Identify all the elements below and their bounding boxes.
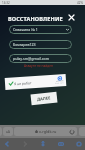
button[interactable]: Bookmarks: [55, 138, 66, 150]
staticText: ᴀA: [6, 129, 11, 134]
staticText: Я не робот: [14, 80, 32, 86]
staticText: ДАЛЕЕ: [37, 95, 51, 102]
button[interactable]: pulay.sm@gmail.com: [13, 54, 69, 63]
staticText: 42%: [77, 1, 83, 5]
staticText: x-rgldk.ru: [39, 129, 57, 134]
button[interactable]: Close: [66, 12, 77, 23]
button[interactable]: Back: [1, 138, 12, 150]
staticText: Privacy - Terms: [55, 82, 64, 85]
staticText: reCAPTCHA: [56, 80, 64, 83]
button[interactable]: Text size: [3, 127, 13, 136]
button[interactable]: Share: [37, 138, 48, 150]
button[interactable]: ДАЛЕЕ: [30, 92, 57, 105]
staticText: ВОССТАНОВЛЕНИЕ: [8, 15, 63, 23]
staticText: Бочкарев123: [13, 42, 36, 47]
staticText: Скважина № 1: [13, 27, 38, 32]
button[interactable]: Скважина № 1: [13, 25, 69, 34]
button[interactable]: Я не робот: [5, 74, 66, 90]
button[interactable]: Tabs: [73, 138, 84, 150]
button[interactable]: Бочкарев123: [13, 40, 69, 49]
other: Reload: [70, 130, 74, 134]
staticText: pulay.sm@gmail.com: [13, 56, 50, 61]
staticText: 14:32: [2, 1, 10, 5]
button[interactable]: x-rgldk.ru: [14, 127, 77, 136]
staticText: Аккаунт не найден: [24, 64, 53, 68]
